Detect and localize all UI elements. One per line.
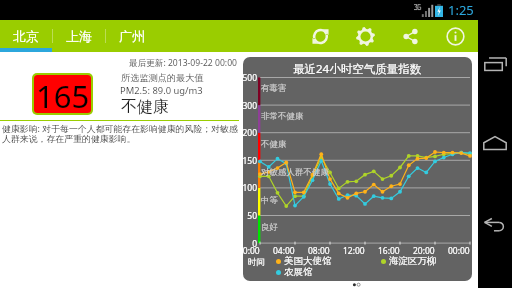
- staticText: 有毒害: [261, 83, 287, 94]
- staticText: 广州: [119, 28, 145, 44]
- staticText: 不健康: [261, 139, 287, 150]
- staticText: 300: [243, 100, 257, 112]
- button[interactable]: 北京: [0, 20, 52, 52]
- staticText: 良好: [261, 222, 278, 233]
- staticText: 所选监测点的最大值: [121, 72, 204, 84]
- staticText: 1:25: [448, 1, 474, 19]
- button[interactable]: Refresh: [298, 20, 343, 52]
- button[interactable]: Back: [478, 199, 512, 249]
- staticText: 中等: [261, 195, 278, 206]
- staticText: 农展馆: [284, 266, 313, 278]
- staticText: PM2.5: 89.0 ug/m3: [120, 84, 203, 97]
- staticText: 健康影响: 对于每一个人都可能存在影响健康的风险；对敏感人群来说，存在严重的健康…: [2, 122, 238, 145]
- staticText: 美国大使馆: [284, 255, 332, 267]
- staticText: 0: [252, 238, 257, 250]
- staticText: 不健康: [121, 97, 169, 117]
- staticText: 上海: [66, 28, 92, 44]
- staticText: 12:00: [343, 245, 365, 257]
- staticText: 时间: [248, 257, 265, 268]
- button[interactable]: Settings: [343, 20, 388, 52]
- button[interactable]: 广州: [106, 20, 158, 52]
- button[interactable]: Home: [478, 118, 512, 168]
- staticText: 非常不健康: [261, 111, 304, 122]
- staticText: 150: [243, 155, 257, 167]
- staticText: 165: [36, 75, 90, 113]
- staticText: 北京: [13, 28, 39, 44]
- staticText: 20:00: [413, 245, 435, 257]
- staticText: 200: [243, 127, 257, 139]
- staticText: 50: [247, 210, 257, 222]
- staticText: 00:00: [243, 245, 260, 257]
- staticText: 海淀区万柳: [389, 255, 437, 267]
- staticText: 最后更新: 2013-09-22 00:00: [129, 57, 237, 69]
- staticText: 00:00: [448, 245, 470, 257]
- staticText: 08:00: [308, 245, 330, 257]
- staticText: 最近24小时空气质量指数: [293, 61, 422, 77]
- staticText: 04:00: [273, 245, 295, 257]
- button[interactable]: Share: [388, 20, 433, 52]
- button[interactable]: Recents: [478, 39, 512, 89]
- button[interactable]: Info: [433, 20, 478, 52]
- staticText: 16:00: [378, 245, 400, 257]
- staticText: 100: [243, 182, 257, 194]
- button[interactable]: 上海: [53, 20, 105, 52]
- staticText: 500: [243, 72, 257, 84]
- staticText: 对敏感人群不健康: [261, 167, 329, 178]
